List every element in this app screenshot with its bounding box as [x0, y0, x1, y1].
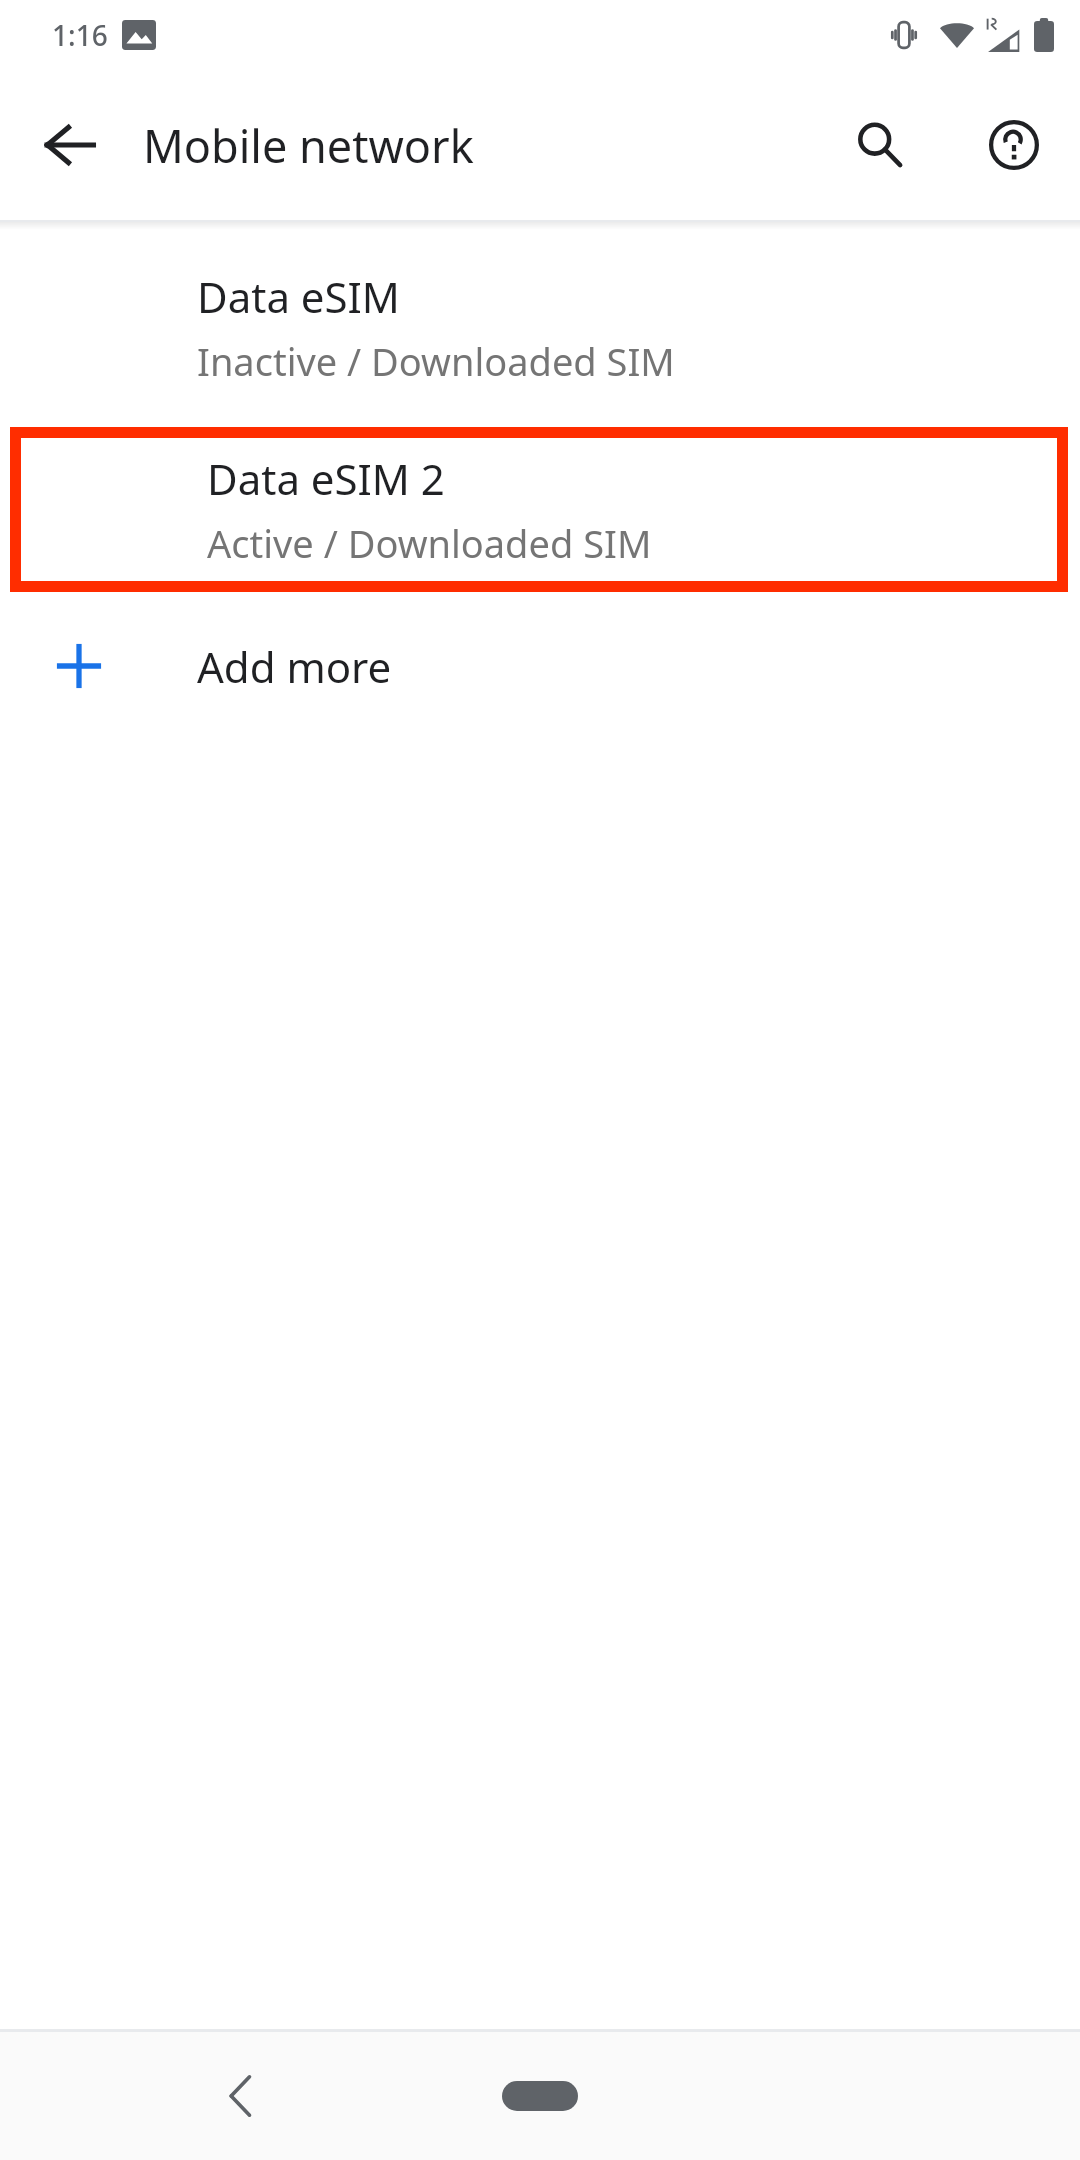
button[interactable]: Home: [470, 2052, 610, 2140]
button[interactable]: Search: [832, 97, 928, 193]
staticText: 1:16: [52, 16, 108, 54]
button[interactable]: Navigate up: [22, 97, 118, 193]
staticText: Data eSIM: [197, 268, 400, 325]
button[interactable]: Back: [196, 2052, 284, 2140]
staticText: Inactive / Downloaded SIM: [197, 335, 675, 387]
staticText: Active / Downloaded SIM: [207, 517, 652, 569]
button[interactable]: Add more: [0, 601, 1080, 731]
staticText: Add more: [197, 638, 392, 695]
button[interactable]: Help: [966, 97, 1062, 193]
staticText: Mobile network: [143, 115, 474, 176]
staticText: Data eSIM 2: [207, 450, 445, 507]
button[interactable]: Data eSIM 2: [21, 438, 1057, 581]
button[interactable]: Data eSIM: [0, 230, 1080, 425]
